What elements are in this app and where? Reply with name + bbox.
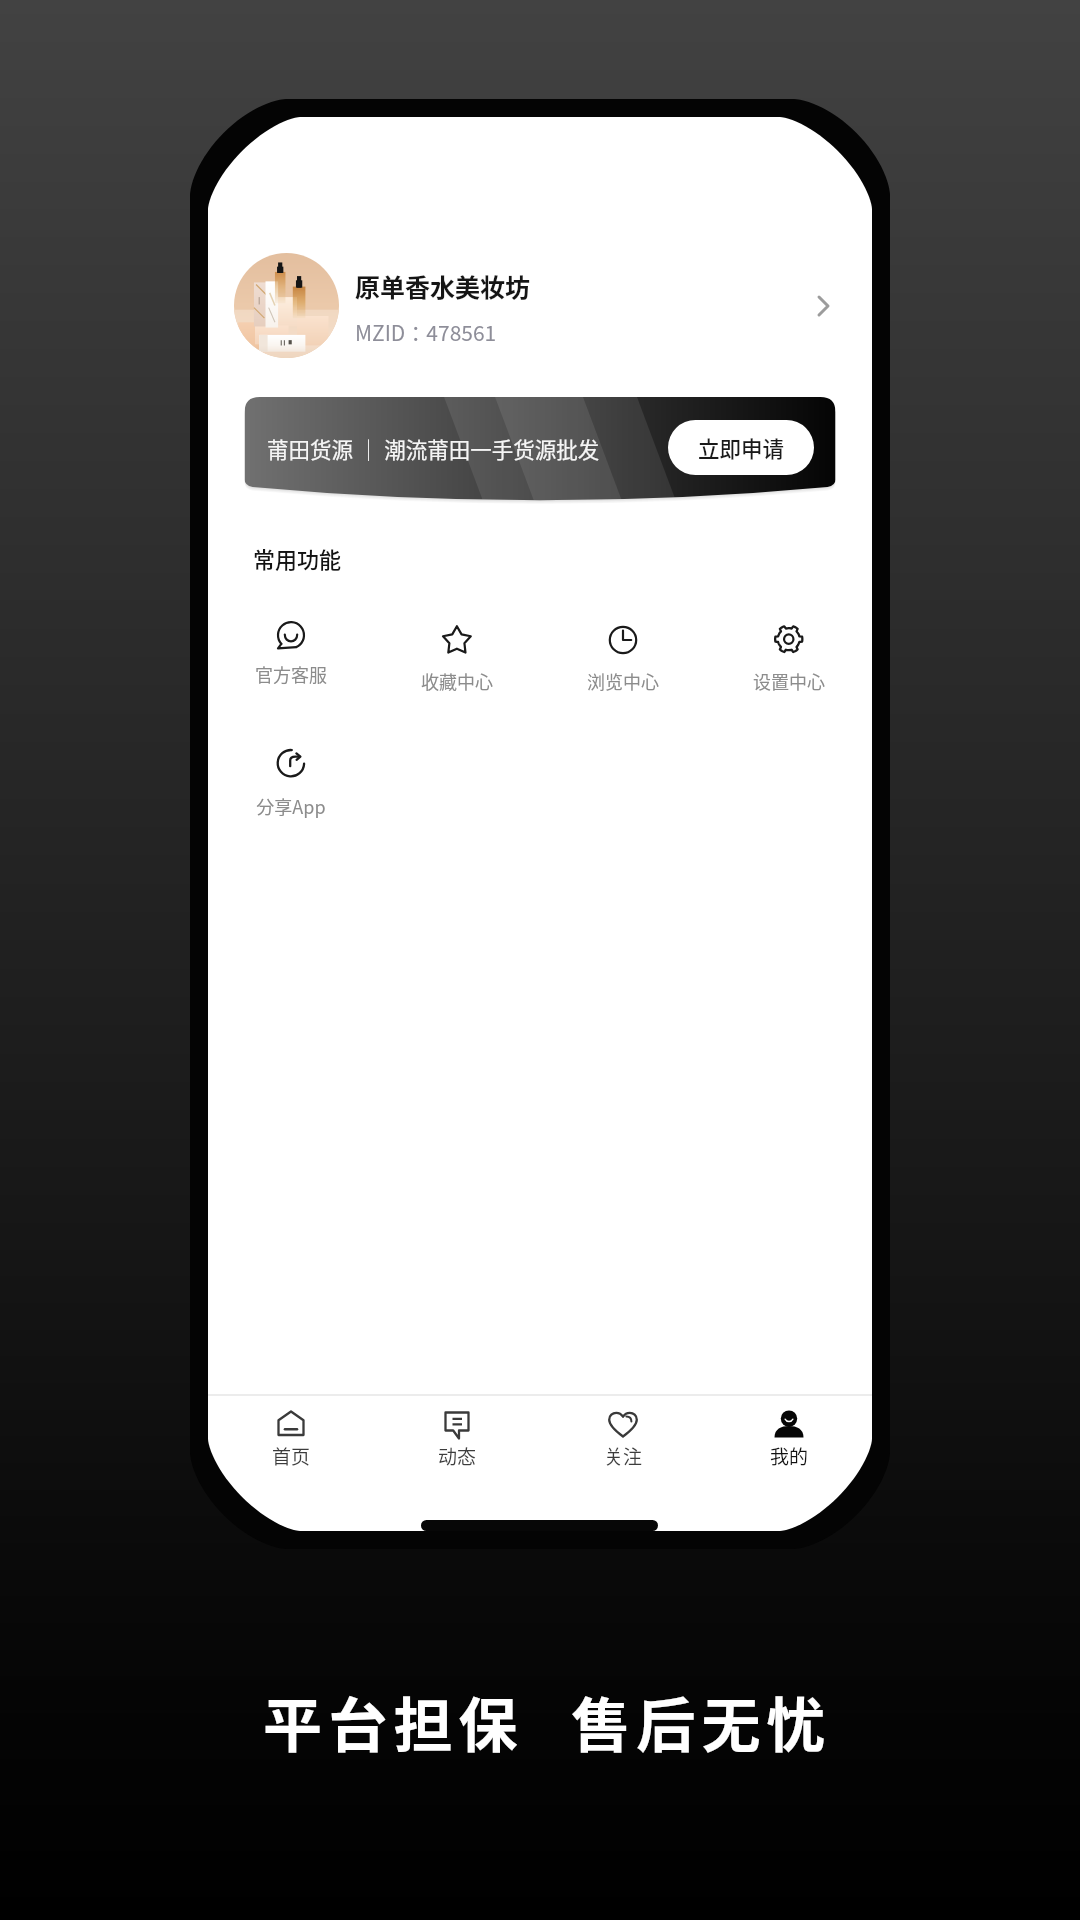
staticText: 常用功能 (253, 542, 342, 574)
button[interactable] (540, 604, 706, 712)
staticText: 我的 (706, 1442, 872, 1470)
button[interactable] (374, 604, 540, 712)
button[interactable] (208, 1392, 374, 1498)
staticText: 平台担保 (263, 1679, 524, 1764)
staticText: 首页 (208, 1442, 374, 1470)
staticText: 立即申请 (698, 432, 785, 463)
staticText: 分享App (208, 793, 374, 819)
button[interactable] (706, 1392, 872, 1498)
staticText: 浏览中心 (540, 668, 706, 694)
button[interactable] (208, 601, 374, 709)
button[interactable] (540, 1392, 706, 1498)
button[interactable]: Open shop detail (803, 286, 843, 326)
button[interactable] (236, 389, 844, 509)
button[interactable] (208, 728, 374, 836)
staticText: 售后无忧 (571, 1679, 832, 1764)
button[interactable] (374, 1392, 540, 1498)
staticText: 设置中心 (706, 668, 872, 694)
staticText: MZID：478561 (355, 317, 497, 347)
button[interactable]: Shop avatar (234, 253, 339, 358)
staticText: 动态 (374, 1442, 540, 1470)
button[interactable]: 立即申请 (668, 420, 814, 475)
button[interactable] (706, 604, 872, 712)
staticText: 莆田货源 ｜ 潮流莆田一手货源批发 (267, 433, 600, 464)
staticText: 原单香水美妆坊 (355, 268, 531, 304)
staticText: 收藏中心 (374, 668, 540, 694)
staticText: 官方客服 (208, 661, 374, 687)
staticText: 关注 (540, 1442, 706, 1470)
